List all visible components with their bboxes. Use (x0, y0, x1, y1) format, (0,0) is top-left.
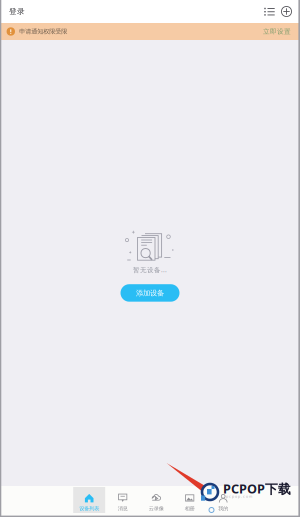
button[interactable]: 添加设备 (120, 284, 179, 302)
button[interactable]: 添加设备 (278, 3, 295, 20)
staticText: PCPOP下载 (223, 480, 291, 497)
staticText: 云录像 (149, 505, 164, 512)
button[interactable]: 云录像 (140, 487, 172, 513)
button[interactable]: 消息 (107, 487, 139, 513)
button[interactable]: 列表 (261, 3, 278, 20)
staticText: 登录 (9, 7, 25, 16)
button[interactable]: 立即设置 (263, 27, 291, 36)
staticText: 消息 (118, 505, 128, 512)
staticText: 设备列表 (79, 505, 99, 512)
staticText: 申请通知权限受限 (19, 28, 67, 35)
button[interactable]: 我的 (207, 487, 239, 513)
button[interactable]: 设备列表 (73, 487, 105, 513)
staticText: 相册 (185, 505, 195, 512)
staticText: 我的 (218, 505, 228, 512)
button[interactable]: 相册 (174, 487, 206, 513)
staticText: p c p o p . c o m (226, 494, 252, 499)
staticText: 立即设置 (263, 27, 291, 36)
staticText: 添加设备 (136, 288, 164, 297)
staticText: 暂无设备... (133, 265, 167, 274)
